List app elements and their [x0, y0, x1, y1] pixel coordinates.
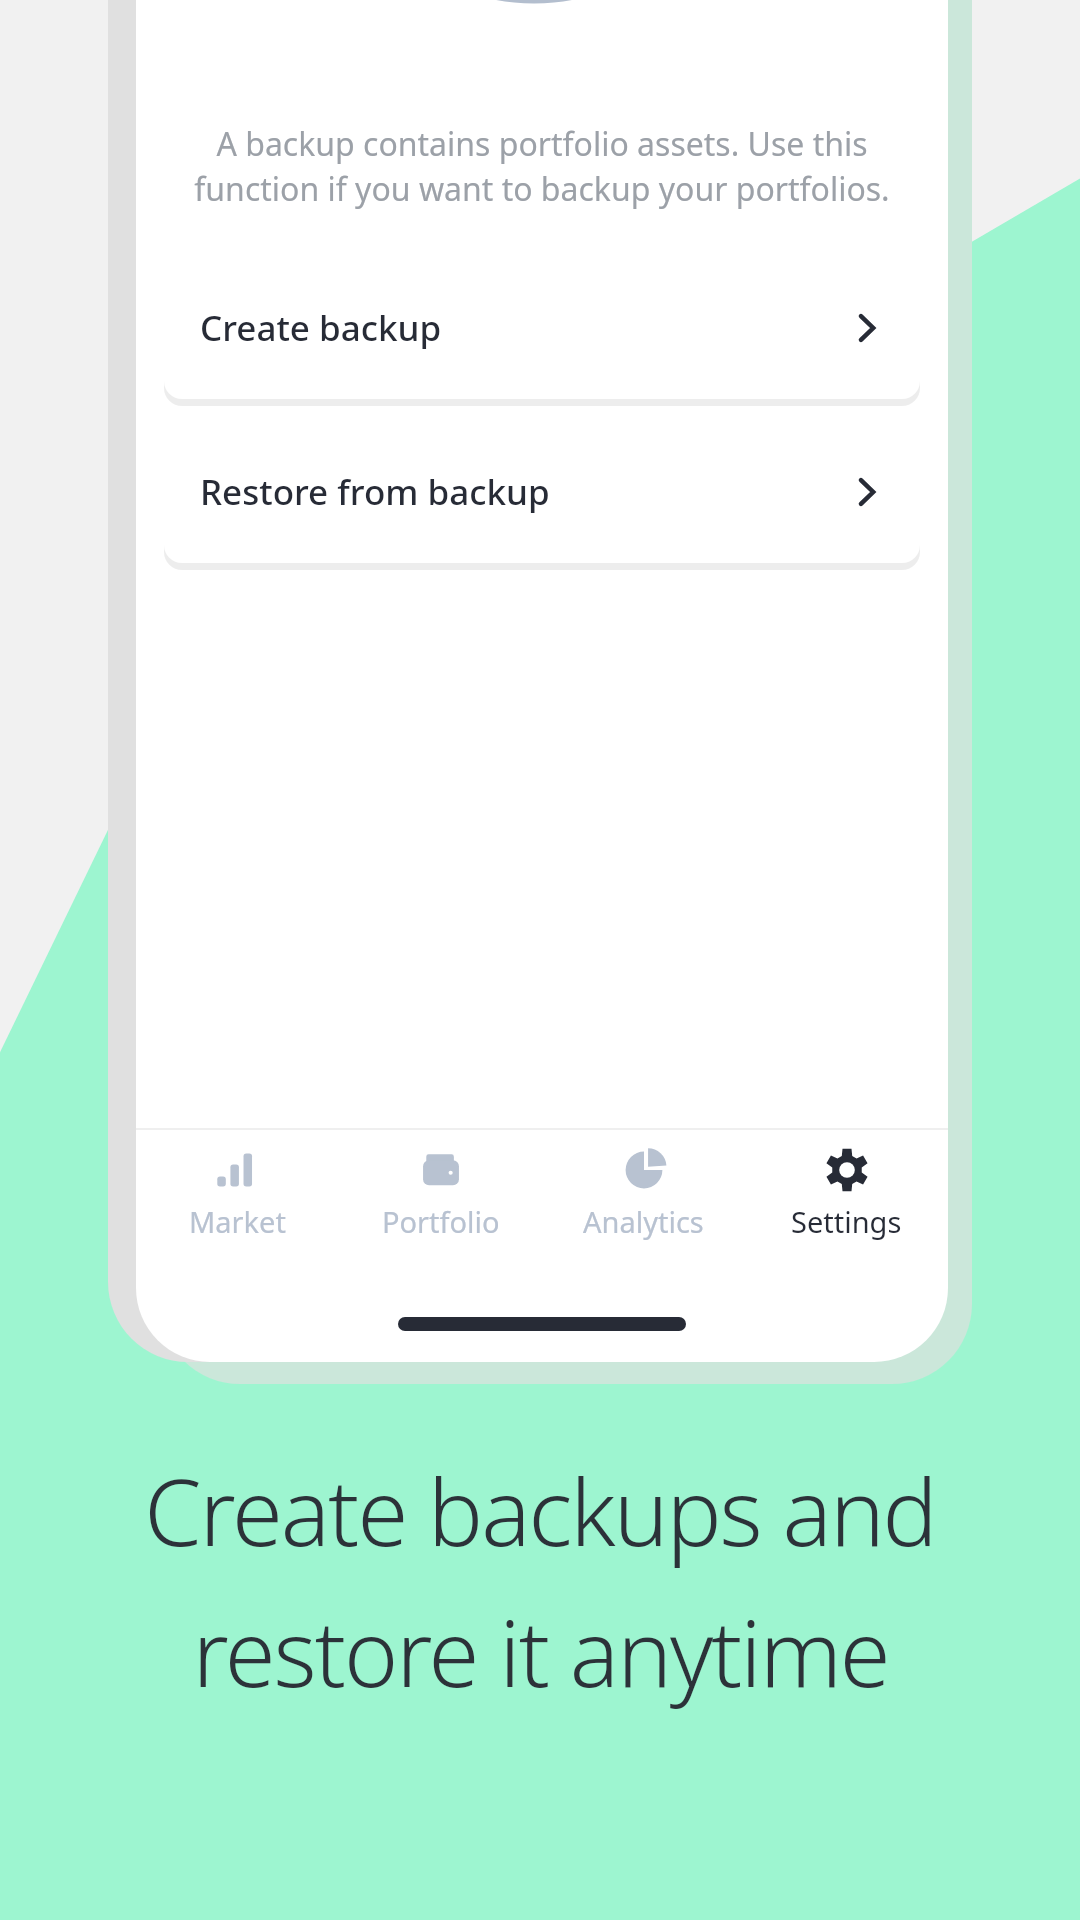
staticText: Market — [189, 1202, 286, 1241]
staticText: Settings — [791, 1202, 902, 1241]
button[interactable]: Market — [136, 1130, 339, 1258]
button[interactable]: Portfolio — [339, 1130, 542, 1258]
staticText: Create backup — [200, 304, 442, 352]
button[interactable]: Analytics — [542, 1130, 745, 1258]
staticText: Create backups and — [144, 1448, 936, 1573]
staticText: A backup contains portfolio assets. Use … — [188, 122, 896, 211]
button[interactable]: Restore from backup — [164, 421, 920, 563]
staticText: restore it anytime — [192, 1589, 889, 1714]
staticText: Portfolio — [382, 1202, 500, 1241]
button[interactable]: Settings — [745, 1130, 948, 1258]
button[interactable]: Create backup — [164, 257, 920, 399]
staticText: Restore from backup — [200, 468, 550, 516]
staticText: Analytics — [583, 1202, 704, 1241]
